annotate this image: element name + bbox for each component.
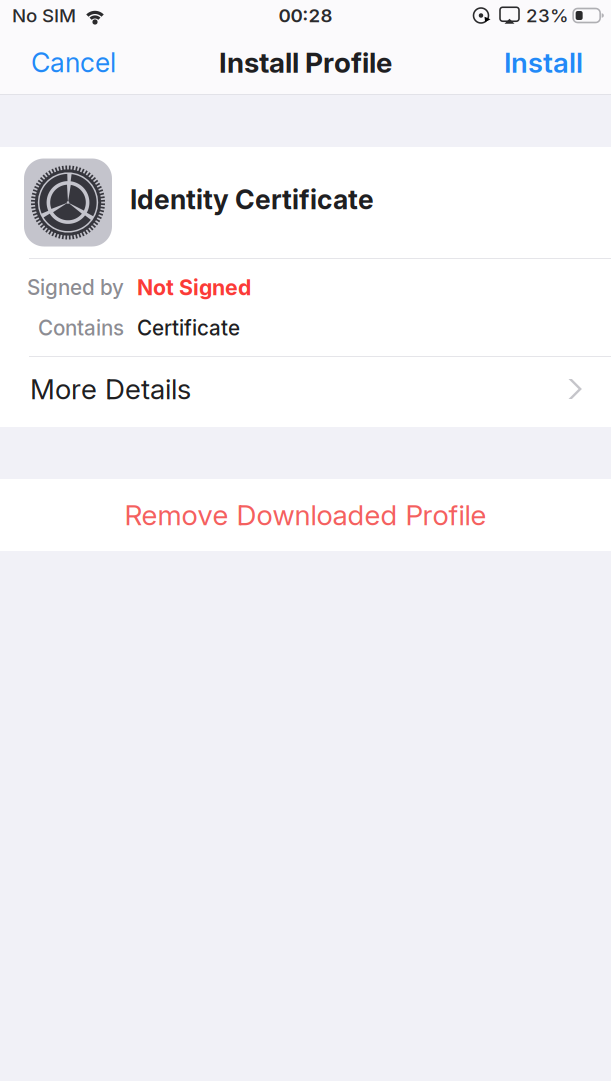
staticText: 00:28 <box>278 4 332 27</box>
staticText: Not Signed <box>137 275 251 300</box>
staticText: More Details <box>30 372 191 406</box>
button[interactable]: Cancel <box>0 31 128 94</box>
staticText: Signed by <box>27 275 124 300</box>
staticText: Remove Downloaded Profile <box>124 498 486 532</box>
staticText: Contains <box>38 315 124 340</box>
staticText: Cancel <box>31 46 116 79</box>
staticText: Certificate <box>137 315 240 340</box>
button[interactable]: Install <box>492 31 611 94</box>
staticText: 23% <box>526 4 569 27</box>
staticText: No SIM <box>12 4 76 27</box>
staticText: Install <box>504 46 583 79</box>
button[interactable]: More Details <box>0 357 611 427</box>
button[interactable]: Remove Downloaded Profile <box>0 479 611 551</box>
staticText: Identity Certificate <box>130 183 374 216</box>
staticText: Install Profile <box>219 46 392 79</box>
